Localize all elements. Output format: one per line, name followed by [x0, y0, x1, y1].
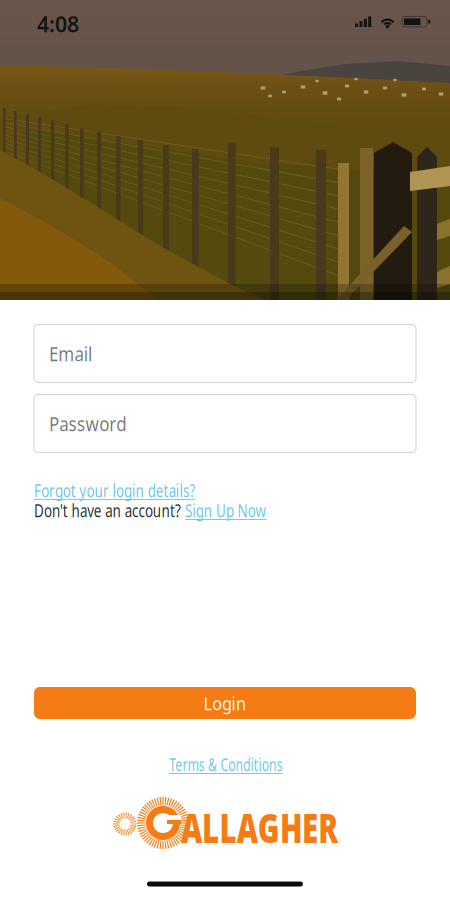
button[interactable]: Email	[34, 324, 416, 382]
button[interactable]: Terms & Conditions	[168, 755, 284, 773]
staticText: Sign Up Now	[185, 498, 298, 522]
staticText: Terms & Conditions	[139, 752, 312, 776]
button[interactable]: Login	[34, 687, 416, 719]
button[interactable]: Sign Up Now	[185, 501, 265, 519]
staticText: Email	[49, 340, 100, 367]
staticText: ALLAGHER	[181, 801, 345, 842]
staticText: Don't have an account?	[34, 498, 238, 522]
staticText: Password	[49, 410, 140, 437]
staticText: 4:08	[37, 10, 79, 38]
button[interactable]: Password	[34, 394, 416, 452]
staticText: Login	[200, 691, 249, 715]
button[interactable]: Forgot your login details?	[34, 481, 190, 499]
staticText: Forgot your login details?	[34, 478, 258, 502]
